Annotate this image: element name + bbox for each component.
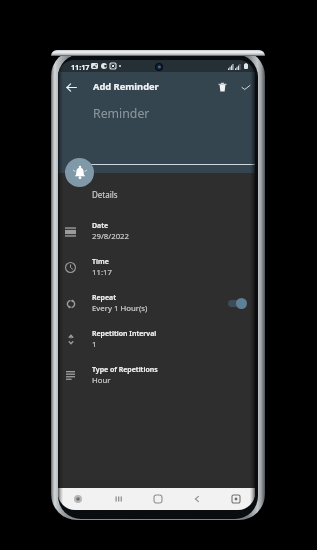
button[interactable]: Home xyxy=(138,488,177,510)
staticText: 29/8/2022 xyxy=(92,231,130,242)
staticText: Time xyxy=(92,257,109,267)
staticText: Reminder xyxy=(93,105,150,122)
button[interactable]: Type of Repetitions xyxy=(58,357,255,393)
button[interactable]: Reminder type xyxy=(65,158,94,187)
button[interactable]: Back xyxy=(61,77,81,97)
staticText: Details xyxy=(92,189,118,200)
staticText: Repeat xyxy=(92,293,117,303)
staticText: 11:17 xyxy=(92,267,112,278)
staticText: 1 xyxy=(92,339,97,350)
button[interactable]: Keyboard toggle xyxy=(58,488,98,510)
staticText: Hour xyxy=(92,375,111,386)
button[interactable]: Repeat xyxy=(58,285,255,321)
staticText: Date xyxy=(92,221,109,231)
button[interactable]: Back xyxy=(177,488,216,510)
staticText: Repetition Interval xyxy=(92,329,157,339)
button[interactable]: Delete xyxy=(213,78,231,96)
staticText: Every 1 Hour(s) xyxy=(92,303,148,314)
button[interactable]: Time xyxy=(58,249,255,285)
button[interactable]: Repetition Interval xyxy=(58,321,255,357)
button[interactable]: Recent apps xyxy=(98,488,138,510)
staticText: Type of Repetitions xyxy=(92,365,158,375)
button[interactable]: Screenshot xyxy=(216,488,255,510)
button[interactable]: Date xyxy=(58,213,255,249)
button[interactable]: Save xyxy=(237,78,255,96)
staticText: 11:17 xyxy=(71,62,90,72)
staticText: Add Reminder xyxy=(93,80,159,93)
